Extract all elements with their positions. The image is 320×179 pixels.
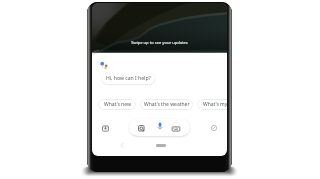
button[interactable]: Snapshot bbox=[102, 125, 109, 132]
button[interactable]: Hi, how can I help? bbox=[102, 73, 155, 84]
staticText: What's my schedule bbox=[203, 101, 227, 108]
button[interactable]: Google Lens bbox=[138, 125, 145, 132]
button[interactable]: What's my schedule bbox=[197, 99, 227, 110]
button[interactable]: Explore bbox=[211, 125, 217, 131]
staticText: What's new bbox=[104, 101, 131, 108]
staticText: Swipe up to see your updates bbox=[131, 40, 188, 46]
staticText: Hi, how can I help? bbox=[106, 75, 151, 82]
button[interactable]: What's the weather bbox=[140, 99, 193, 110]
button[interactable]: What's new bbox=[98, 99, 136, 110]
button[interactable]: Back bbox=[120, 142, 124, 149]
button[interactable]: Speak bbox=[156, 122, 164, 130]
staticText: What's the weather bbox=[144, 101, 190, 108]
button[interactable]: Keyboard bbox=[172, 125, 180, 133]
